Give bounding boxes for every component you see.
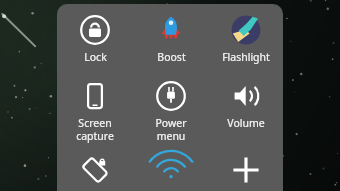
staticText: Volume (227, 116, 265, 130)
button[interactable]: Flashlight (220, 15, 272, 64)
button[interactable]: Screen capture (74, 81, 116, 143)
staticText: Screen capture (76, 116, 114, 143)
staticText: Flashlight (222, 50, 270, 64)
staticText: Lock (84, 50, 107, 64)
staticText: Boost (157, 50, 186, 64)
button[interactable]: Rotation lock (78, 155, 112, 185)
button[interactable]: Add tile (229, 155, 263, 185)
button[interactable]: Boost (154, 15, 188, 64)
staticText: Power menu (155, 116, 187, 143)
button[interactable]: Wi-Fi (154, 155, 188, 185)
button[interactable]: Power menu (153, 81, 189, 143)
button[interactable]: Lock (78, 15, 112, 64)
button[interactable]: Volume (225, 81, 267, 130)
